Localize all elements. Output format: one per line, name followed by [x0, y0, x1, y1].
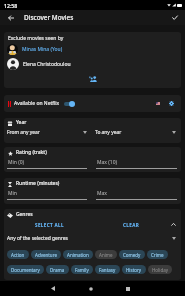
- button[interactable]: Holiday: [148, 265, 172, 274]
- staticText: Minas Mina (You): [22, 46, 63, 53]
- button[interactable]: Back: [0, 10, 22, 25]
- button[interactable]: Recent apps: [118, 281, 138, 296]
- button[interactable]: Family: [71, 265, 93, 274]
- button[interactable]: Max (10): [96, 159, 177, 169]
- staticText: SELECT ALL: [35, 222, 64, 228]
- button[interactable]: CLEAR: [113, 219, 149, 230]
- staticText: Year: [16, 119, 27, 126]
- button[interactable]: Min: [7, 190, 87, 200]
- button[interactable]: History: [122, 265, 146, 274]
- button[interactable]: Max: [96, 190, 177, 200]
- staticText: From any year: [7, 129, 40, 136]
- button[interactable]: Drama: [46, 265, 69, 274]
- staticText: Rating (trakt): [16, 149, 47, 156]
- staticText: Max (10): [97, 159, 118, 166]
- button[interactable]: Documentary: [7, 265, 44, 274]
- staticText: Crime: [151, 252, 164, 258]
- staticText: Holiday: [152, 267, 168, 273]
- button[interactable]: Action: [7, 250, 29, 259]
- staticText: Available on Netflix: [14, 100, 60, 107]
- staticText: 12:58: [4, 2, 18, 9]
- button[interactable]: Min (0): [7, 159, 87, 169]
- staticText: Animation: [67, 252, 89, 258]
- button[interactable]: Crime: [147, 250, 168, 259]
- button[interactable]: To any year: [92, 127, 181, 137]
- button[interactable]: Comedy: [119, 250, 145, 259]
- button[interactable]: Add person: [86, 73, 100, 85]
- button[interactable]: Available on Netflix toggle: [64, 101, 75, 107]
- staticText: Action: [11, 252, 25, 258]
- button[interactable]: Fantasy: [95, 265, 120, 274]
- staticText: Adventure: [35, 252, 57, 258]
- staticText: Min (0): [8, 159, 25, 166]
- staticText: Elena Christodoulou: [23, 61, 71, 68]
- button[interactable]: Apply filters: [165, 10, 185, 25]
- staticText: Any of the selected genres: [7, 235, 68, 242]
- button[interactable]: SELECT ALL: [21, 219, 77, 230]
- button[interactable]: Any of the selected genres: [4, 233, 181, 243]
- button[interactable]: Netflix settings: [165, 97, 177, 110]
- button[interactable]: Elena Christodoulou: [4, 57, 181, 71]
- staticText: Min: [8, 190, 17, 197]
- staticText: To any year: [95, 129, 122, 136]
- staticText: Genres: [16, 211, 33, 218]
- button[interactable]: Minas Mina (You): [4, 42, 181, 56]
- staticText: CLEAR: [123, 222, 140, 228]
- button[interactable]: Anime: [95, 250, 117, 259]
- staticText: Drama: [50, 267, 65, 273]
- staticText: Comedy: [123, 252, 141, 258]
- button[interactable]: From any year: [4, 127, 92, 137]
- button[interactable]: Back: [43, 281, 63, 296]
- staticText: Anime: [99, 252, 113, 258]
- button[interactable]: Region: [153, 97, 162, 110]
- staticText: Max: [97, 190, 107, 197]
- staticText: Documentary: [11, 267, 40, 273]
- staticText: Family: [75, 267, 89, 273]
- button[interactable]: Animation: [63, 250, 93, 259]
- staticText: Exclude movies seen by: [8, 35, 64, 42]
- staticText: Runtime (minutes): [16, 180, 60, 187]
- staticText: History: [126, 267, 142, 273]
- button[interactable]: Home: [81, 281, 101, 296]
- button[interactable]: Adventure: [31, 250, 61, 259]
- staticText: Discover Movies: [24, 13, 74, 22]
- staticText: Fantasy: [99, 267, 116, 273]
- button[interactable]: Collapse genres: [165, 219, 181, 230]
